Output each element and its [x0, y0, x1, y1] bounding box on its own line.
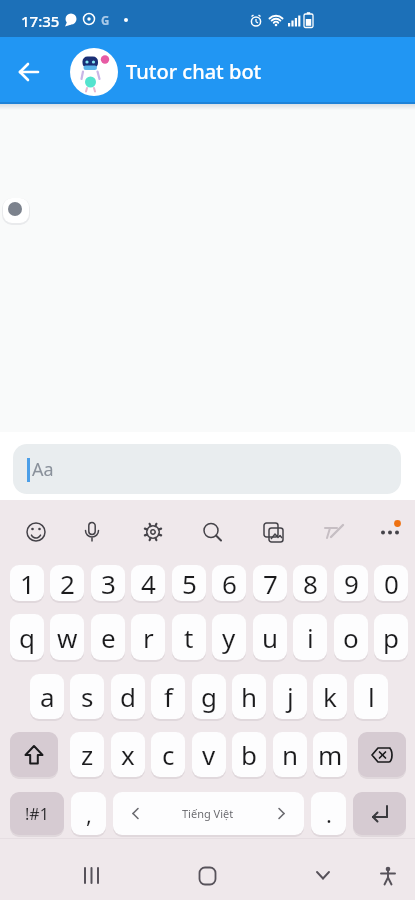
button[interactable]: 6: [212, 565, 246, 601]
staticText: y: [222, 620, 236, 655]
staticText: Tutor chat bot: [126, 58, 262, 85]
staticText: 2: [60, 566, 75, 601]
button[interactable]: 1: [10, 565, 44, 601]
staticText: G: [101, 13, 110, 29]
staticText: d: [120, 679, 136, 714]
button[interactable]: x: [111, 732, 145, 777]
button[interactable]: t: [172, 614, 206, 660]
button[interactable]: k: [313, 674, 347, 719]
button[interactable]: [368, 512, 408, 552]
button[interactable]: e: [91, 614, 125, 660]
staticText: 5: [182, 566, 197, 601]
button[interactable]: c: [151, 732, 185, 777]
button[interactable]: w: [50, 614, 84, 660]
button[interactable]: f: [151, 674, 185, 719]
button[interactable]: [13, 444, 401, 494]
staticText: 0: [384, 566, 399, 601]
button[interactable]: h: [232, 674, 266, 719]
button[interactable]: 0: [374, 565, 408, 601]
button[interactable]: [72, 512, 112, 552]
button[interactable]: [356, 852, 415, 892]
staticText: f: [164, 679, 173, 714]
button[interactable]: v: [192, 732, 226, 777]
button[interactable]: [192, 512, 232, 552]
staticText: x: [121, 737, 135, 772]
staticText: a: [40, 679, 55, 714]
button[interactable]: [10, 732, 58, 777]
button[interactable]: 4: [131, 565, 165, 601]
staticText: Tiếng Việt: [182, 806, 234, 821]
button[interactable]: 5: [172, 565, 206, 601]
staticText: e: [101, 620, 116, 655]
staticText: c: [162, 737, 175, 772]
staticText: m: [318, 737, 343, 772]
button[interactable]: [63, 852, 123, 892]
button[interactable]: 2: [50, 565, 84, 601]
button[interactable]: [16, 512, 56, 552]
button[interactable]: ,: [71, 792, 106, 835]
button[interactable]: u: [253, 614, 287, 660]
button[interactable]: n: [273, 732, 307, 777]
button[interactable]: r: [131, 614, 165, 660]
button[interactable]: [133, 512, 173, 552]
staticText: .: [326, 799, 332, 829]
button[interactable]: [9, 52, 49, 92]
button[interactable]: [358, 732, 406, 777]
button[interactable]: 8: [293, 565, 327, 601]
staticText: l: [368, 679, 375, 714]
button[interactable]: 7: [253, 565, 287, 601]
button[interactable]: g: [192, 674, 226, 719]
staticText: i: [307, 620, 314, 655]
button[interactable]: l: [354, 674, 388, 719]
staticText: b: [241, 737, 257, 772]
button[interactable]: i: [293, 614, 327, 660]
button[interactable]: !#1: [10, 792, 64, 835]
staticText: v: [202, 737, 216, 772]
staticText: g: [201, 679, 217, 714]
button[interactable]: o: [334, 614, 368, 660]
button[interactable]: p: [374, 614, 408, 660]
button[interactable]: [253, 512, 293, 552]
button[interactable]: j: [273, 674, 307, 719]
staticText: s: [81, 679, 94, 714]
button[interactable]: [292, 852, 352, 892]
staticText: 4: [141, 566, 156, 601]
staticText: r: [143, 620, 154, 655]
staticText: q: [19, 620, 35, 655]
staticText: 6: [222, 566, 237, 601]
staticText: 9: [344, 566, 359, 601]
button[interactable]: d: [111, 674, 145, 719]
button[interactable]: 3: [91, 565, 125, 601]
staticText: ,: [86, 799, 92, 829]
staticText: Aa: [32, 457, 54, 482]
button[interactable]: [113, 792, 304, 835]
button[interactable]: m: [313, 732, 347, 777]
button[interactable]: q: [10, 614, 44, 660]
staticText: j: [287, 679, 294, 714]
staticText: w: [57, 620, 78, 655]
button[interactable]: .: [311, 792, 346, 835]
staticText: 8: [303, 566, 318, 601]
button[interactable]: a: [30, 674, 64, 719]
staticText: n: [282, 737, 299, 772]
button[interactable]: [178, 852, 238, 892]
staticText: o: [343, 620, 359, 655]
staticText: 17:35: [21, 11, 60, 31]
staticText: 1: [20, 566, 35, 601]
button[interactable]: [314, 512, 354, 552]
button[interactable]: y: [212, 614, 246, 660]
staticText: u: [262, 620, 279, 655]
button[interactable]: [70, 48, 118, 96]
staticText: p: [383, 620, 399, 655]
button[interactable]: s: [70, 674, 104, 719]
button[interactable]: z: [70, 732, 104, 777]
staticText: z: [81, 737, 94, 772]
staticText: 7: [263, 566, 278, 601]
staticText: h: [241, 679, 258, 714]
button[interactable]: [353, 792, 406, 835]
staticText: k: [323, 679, 337, 714]
button[interactable]: 9: [334, 565, 368, 601]
button[interactable]: b: [232, 732, 266, 777]
staticText: !#1: [25, 803, 49, 825]
staticText: 3: [101, 566, 116, 601]
